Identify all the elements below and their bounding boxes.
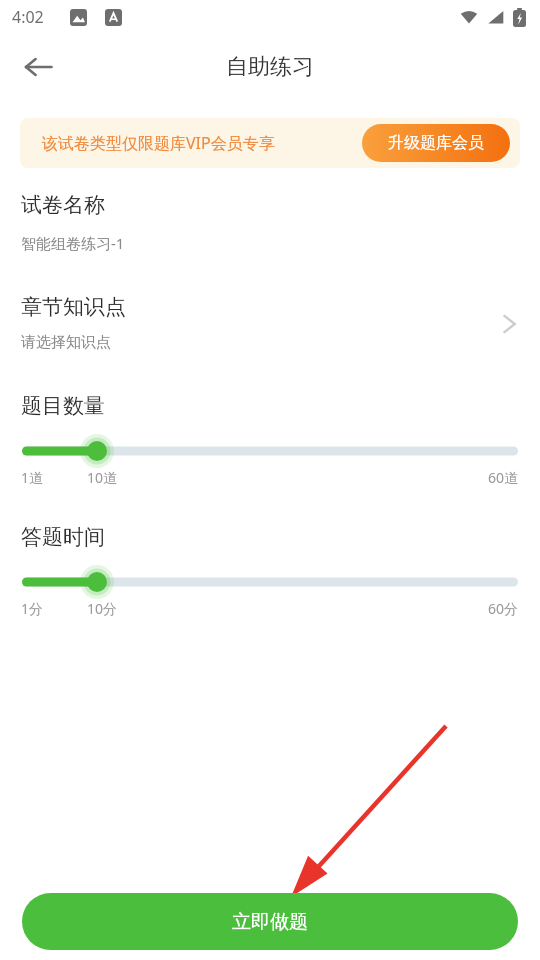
button[interactable]: 答题时间 (0, 566, 540, 598)
staticText: 10道 (87, 468, 118, 487)
staticText: 60道 (488, 468, 519, 487)
button[interactable]: 该试卷类型仅限题库VIP会员专享 (20, 118, 520, 168)
button[interactable]: 章节知识点 (0, 285, 540, 363)
button[interactable]: 题目数量 (0, 435, 540, 467)
staticText: 立即做题 (232, 910, 308, 934)
staticText: 1道 (21, 468, 44, 487)
staticText: 试卷名称 (21, 192, 105, 218)
staticText: 自助练习 (226, 53, 314, 81)
staticText: 答题时间 (21, 524, 105, 550)
staticText: 4:02 (12, 6, 44, 28)
staticText: 升级题库会员 (388, 133, 484, 153)
staticText: 该试卷类型仅限题库VIP会员专享 (42, 132, 275, 154)
staticText: 1分 (21, 599, 44, 618)
button[interactable]: 立即做题 (22, 893, 518, 950)
staticText: 章节知识点 (21, 294, 126, 320)
staticText: 10分 (87, 599, 118, 618)
button[interactable]: 返回 (14, 43, 62, 91)
staticText: 请选择知识点 (21, 333, 111, 352)
button[interactable]: 升级题库会员 (362, 124, 510, 162)
staticText: 智能组卷练习-1 (21, 233, 125, 253)
staticText: 60分 (488, 599, 519, 618)
staticText: 题目数量 (21, 393, 105, 419)
